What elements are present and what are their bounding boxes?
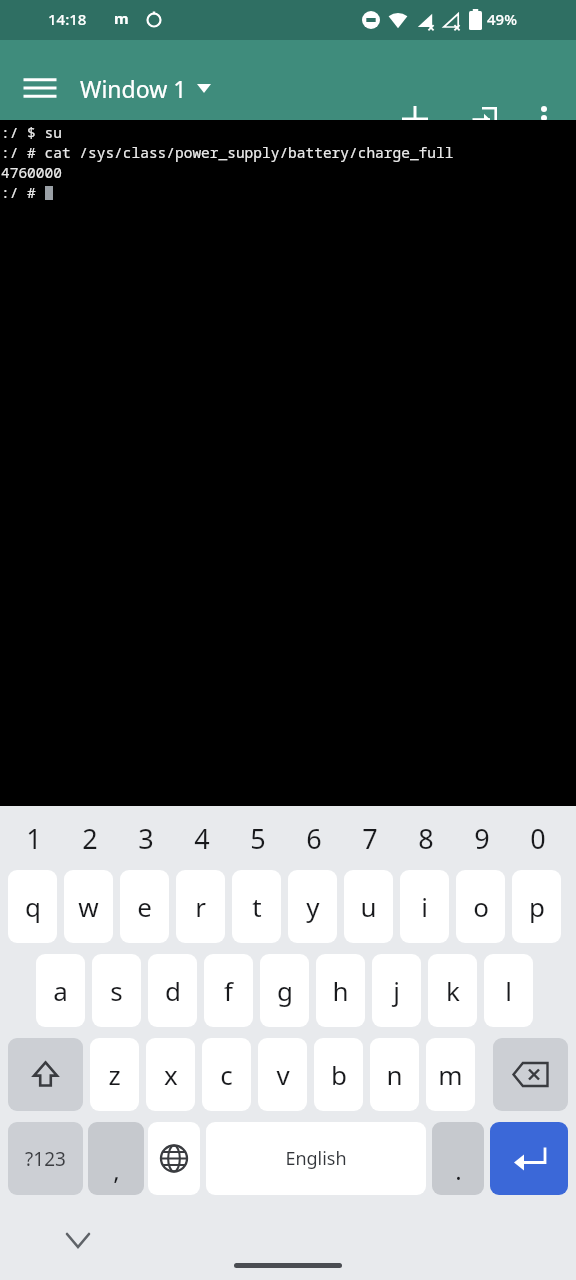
staticText: 4 bbox=[194, 820, 210, 857]
button[interactable]: More options bbox=[520, 94, 568, 142]
button[interactable]: Backspace bbox=[493, 1038, 568, 1111]
button[interactable]: t bbox=[232, 870, 281, 943]
button[interactable]: q bbox=[8, 870, 57, 943]
button[interactable]: r bbox=[176, 870, 225, 943]
button[interactable]: 9 bbox=[456, 812, 508, 864]
button[interactable]: e bbox=[120, 870, 169, 943]
staticText: u bbox=[360, 889, 377, 924]
staticText: m bbox=[114, 8, 129, 28]
button[interactable]: Change keyboard language bbox=[148, 1122, 200, 1195]
button[interactable]: Window 1 bbox=[80, 64, 211, 112]
staticText: j bbox=[393, 973, 400, 1008]
button[interactable]: y bbox=[288, 870, 337, 943]
staticText: 2 bbox=[82, 820, 98, 857]
staticText: p bbox=[529, 889, 545, 924]
button[interactable]: 8 bbox=[400, 812, 452, 864]
button[interactable]: 3 bbox=[120, 812, 172, 864]
staticText: English bbox=[285, 1146, 347, 1171]
staticText: q bbox=[25, 889, 41, 924]
button[interactable]: h bbox=[316, 954, 365, 1027]
button[interactable]: g bbox=[260, 954, 309, 1027]
staticText: m bbox=[438, 1057, 463, 1092]
staticText: 5 bbox=[250, 820, 266, 857]
staticText: :/ $ su bbox=[1, 122, 62, 142]
staticText: 7 bbox=[362, 820, 378, 857]
staticText: k bbox=[446, 973, 460, 1008]
button[interactable]: f bbox=[204, 954, 253, 1027]
button[interactable]: 5 bbox=[232, 812, 284, 864]
staticText: z bbox=[108, 1057, 121, 1092]
staticText: x bbox=[164, 1057, 178, 1092]
button[interactable]: 0 bbox=[512, 812, 564, 864]
button[interactable]: m bbox=[426, 1038, 475, 1111]
button[interactable]: n bbox=[370, 1038, 419, 1111]
staticText: y bbox=[306, 889, 320, 924]
button[interactable]: Hide keyboard bbox=[56, 1218, 100, 1262]
button[interactable]: 7 bbox=[344, 812, 396, 864]
button[interactable]: k bbox=[428, 954, 477, 1027]
staticText: w bbox=[78, 889, 99, 924]
staticText: 49% bbox=[487, 9, 517, 29]
button[interactable]: Enter bbox=[490, 1122, 568, 1195]
button[interactable]: o bbox=[456, 870, 505, 943]
button[interactable]: New session bbox=[390, 94, 440, 144]
staticText: b bbox=[331, 1057, 347, 1092]
button[interactable]: i bbox=[400, 870, 449, 943]
staticText: :/ # cat /sys/class/power_supply/battery… bbox=[1, 142, 454, 162]
staticText: , bbox=[113, 1154, 120, 1187]
staticText: v bbox=[276, 1057, 290, 1092]
button[interactable]: x bbox=[146, 1038, 195, 1111]
button[interactable]: Keyboard input bbox=[459, 94, 509, 144]
staticText: 14:18 bbox=[48, 9, 87, 29]
staticText: o bbox=[473, 889, 489, 924]
staticText: 4760000 bbox=[1, 162, 62, 182]
button[interactable]: . bbox=[432, 1122, 484, 1195]
button[interactable]: 6 bbox=[288, 812, 340, 864]
staticText: e bbox=[137, 889, 152, 924]
button[interactable]: s bbox=[92, 954, 141, 1027]
button[interactable]: p bbox=[512, 870, 561, 943]
button[interactable]: j bbox=[372, 954, 421, 1027]
staticText: 9 bbox=[474, 820, 490, 857]
button[interactable]: Shift bbox=[8, 1038, 83, 1111]
button[interactable]: , bbox=[88, 1122, 144, 1195]
staticText: i bbox=[421, 889, 428, 924]
staticText: d bbox=[165, 973, 181, 1008]
staticText: c bbox=[220, 1057, 233, 1092]
staticText: ?123 bbox=[25, 1146, 66, 1172]
button[interactable]: u bbox=[344, 870, 393, 943]
staticText: l bbox=[505, 973, 512, 1008]
staticText: Window 1 bbox=[80, 73, 187, 104]
button[interactable]: c bbox=[202, 1038, 251, 1111]
staticText: f bbox=[224, 973, 233, 1008]
staticText: 8 bbox=[418, 820, 434, 857]
button[interactable]: d bbox=[148, 954, 197, 1027]
staticText: r bbox=[195, 889, 206, 924]
staticText: . bbox=[455, 1154, 462, 1187]
button[interactable]: v bbox=[258, 1038, 307, 1111]
staticText: n bbox=[386, 1057, 403, 1092]
button[interactable]: 2 bbox=[64, 812, 116, 864]
button[interactable]: ?123 bbox=[8, 1122, 83, 1195]
button[interactable]: l bbox=[484, 954, 533, 1027]
button[interactable]: 4 bbox=[176, 812, 228, 864]
staticText: t bbox=[252, 889, 262, 924]
staticText: 1 bbox=[26, 820, 42, 857]
button[interactable]: Open navigation drawer bbox=[14, 62, 66, 114]
button[interactable]: z bbox=[90, 1038, 139, 1111]
staticText: 0 bbox=[530, 820, 546, 857]
staticText: a bbox=[53, 973, 68, 1008]
staticText: s bbox=[110, 973, 123, 1008]
button[interactable]: English bbox=[206, 1122, 426, 1195]
staticText: 3 bbox=[138, 820, 154, 857]
button[interactable]: b bbox=[314, 1038, 363, 1111]
staticText: :/ # bbox=[1, 182, 45, 202]
button[interactable]: a bbox=[36, 954, 85, 1027]
button[interactable]: 1 bbox=[8, 812, 60, 864]
staticText: g bbox=[277, 973, 293, 1008]
staticText: 6 bbox=[306, 820, 322, 857]
staticText: h bbox=[332, 973, 349, 1008]
button[interactable]: w bbox=[64, 870, 113, 943]
